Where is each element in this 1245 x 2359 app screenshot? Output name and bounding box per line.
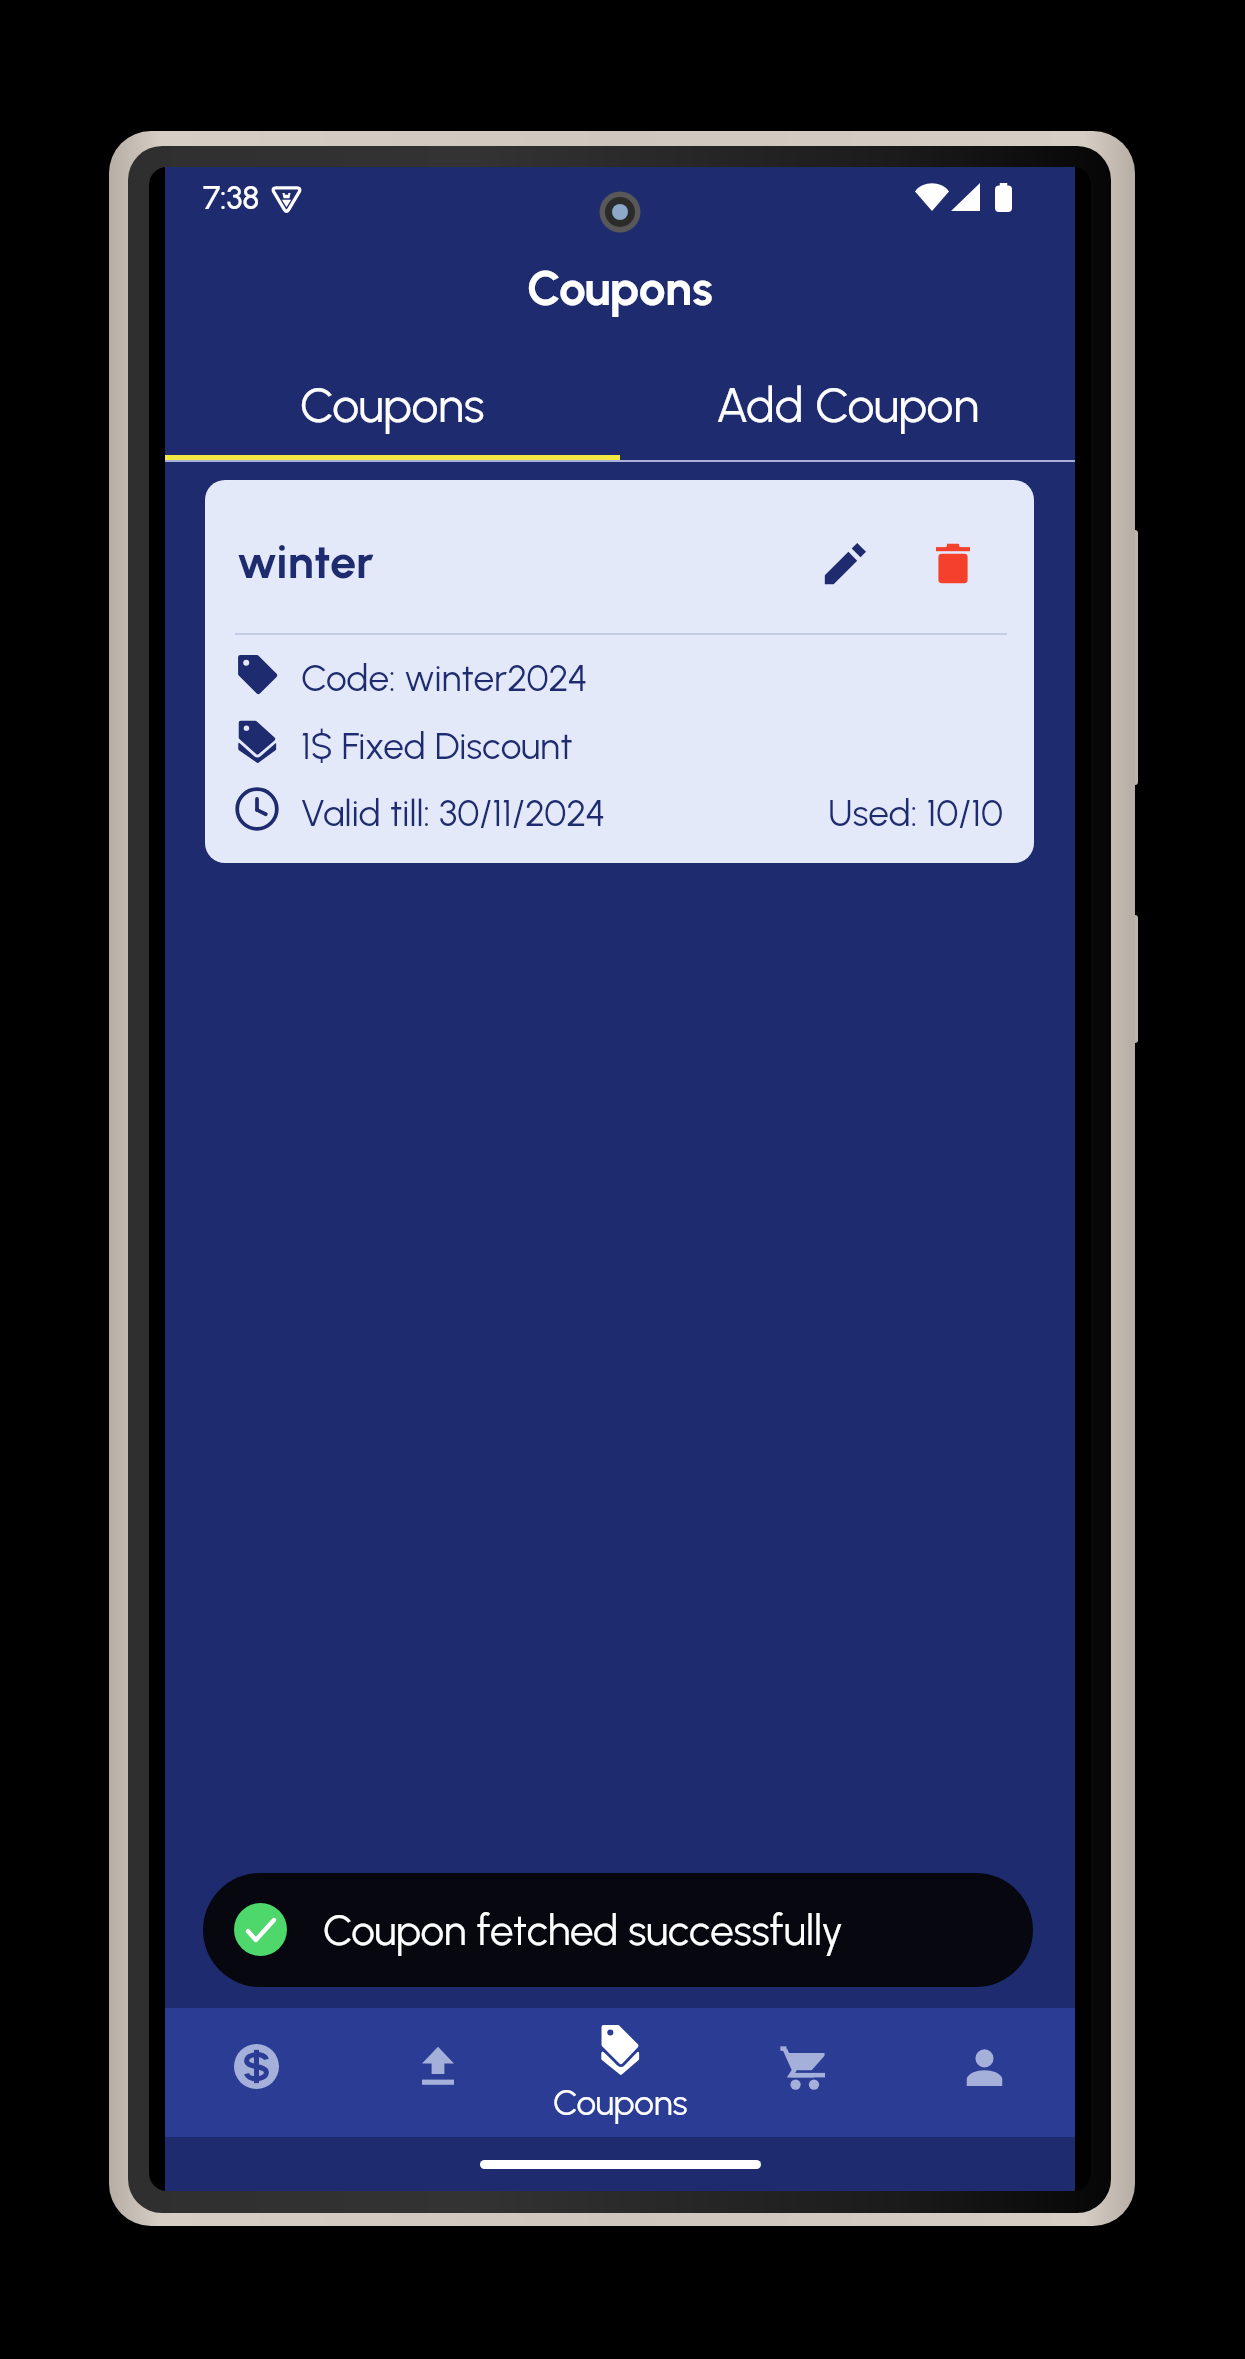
staticText: Add Coupon xyxy=(716,376,979,434)
staticText: Code: winter2024 xyxy=(301,656,588,700)
staticText: 1$ Fixed Discount xyxy=(301,724,573,768)
staticText: Coupons xyxy=(527,259,713,317)
staticText: Valid till: 30/11/2024 xyxy=(301,791,606,835)
button[interactable]: Coupons xyxy=(529,2008,711,2137)
staticText: Used: 10/10 xyxy=(828,791,1004,835)
button[interactable]: Delete coupon xyxy=(917,528,988,599)
button[interactable]: Profile xyxy=(893,2008,1075,2137)
button[interactable]: Edit coupon xyxy=(809,528,880,599)
staticText: Coupon fetched successfully xyxy=(323,1905,844,1955)
button[interactable]: Coupons xyxy=(165,350,620,425)
button[interactable]: winter xyxy=(205,480,1034,863)
staticText: 7:38 xyxy=(203,179,260,217)
staticText: Coupons xyxy=(300,376,485,434)
button[interactable]: Add Coupon xyxy=(620,350,1075,425)
button[interactable]: Upload xyxy=(347,2008,529,2137)
staticText: winter xyxy=(237,533,374,589)
staticText: Coupons xyxy=(553,2082,688,2124)
button[interactable]: Money xyxy=(165,2008,347,2137)
button[interactable]: Coupon fetched successfully xyxy=(203,1873,1033,1987)
button[interactable]: Cart xyxy=(711,2008,893,2137)
